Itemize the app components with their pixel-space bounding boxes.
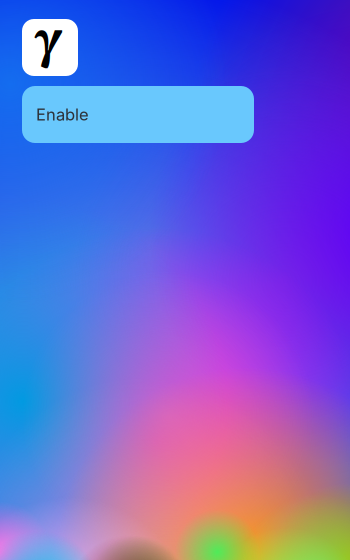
button[interactable]: Enable (22, 86, 254, 143)
staticText: γ (35, 13, 63, 69)
staticText: Enable (36, 104, 89, 124)
